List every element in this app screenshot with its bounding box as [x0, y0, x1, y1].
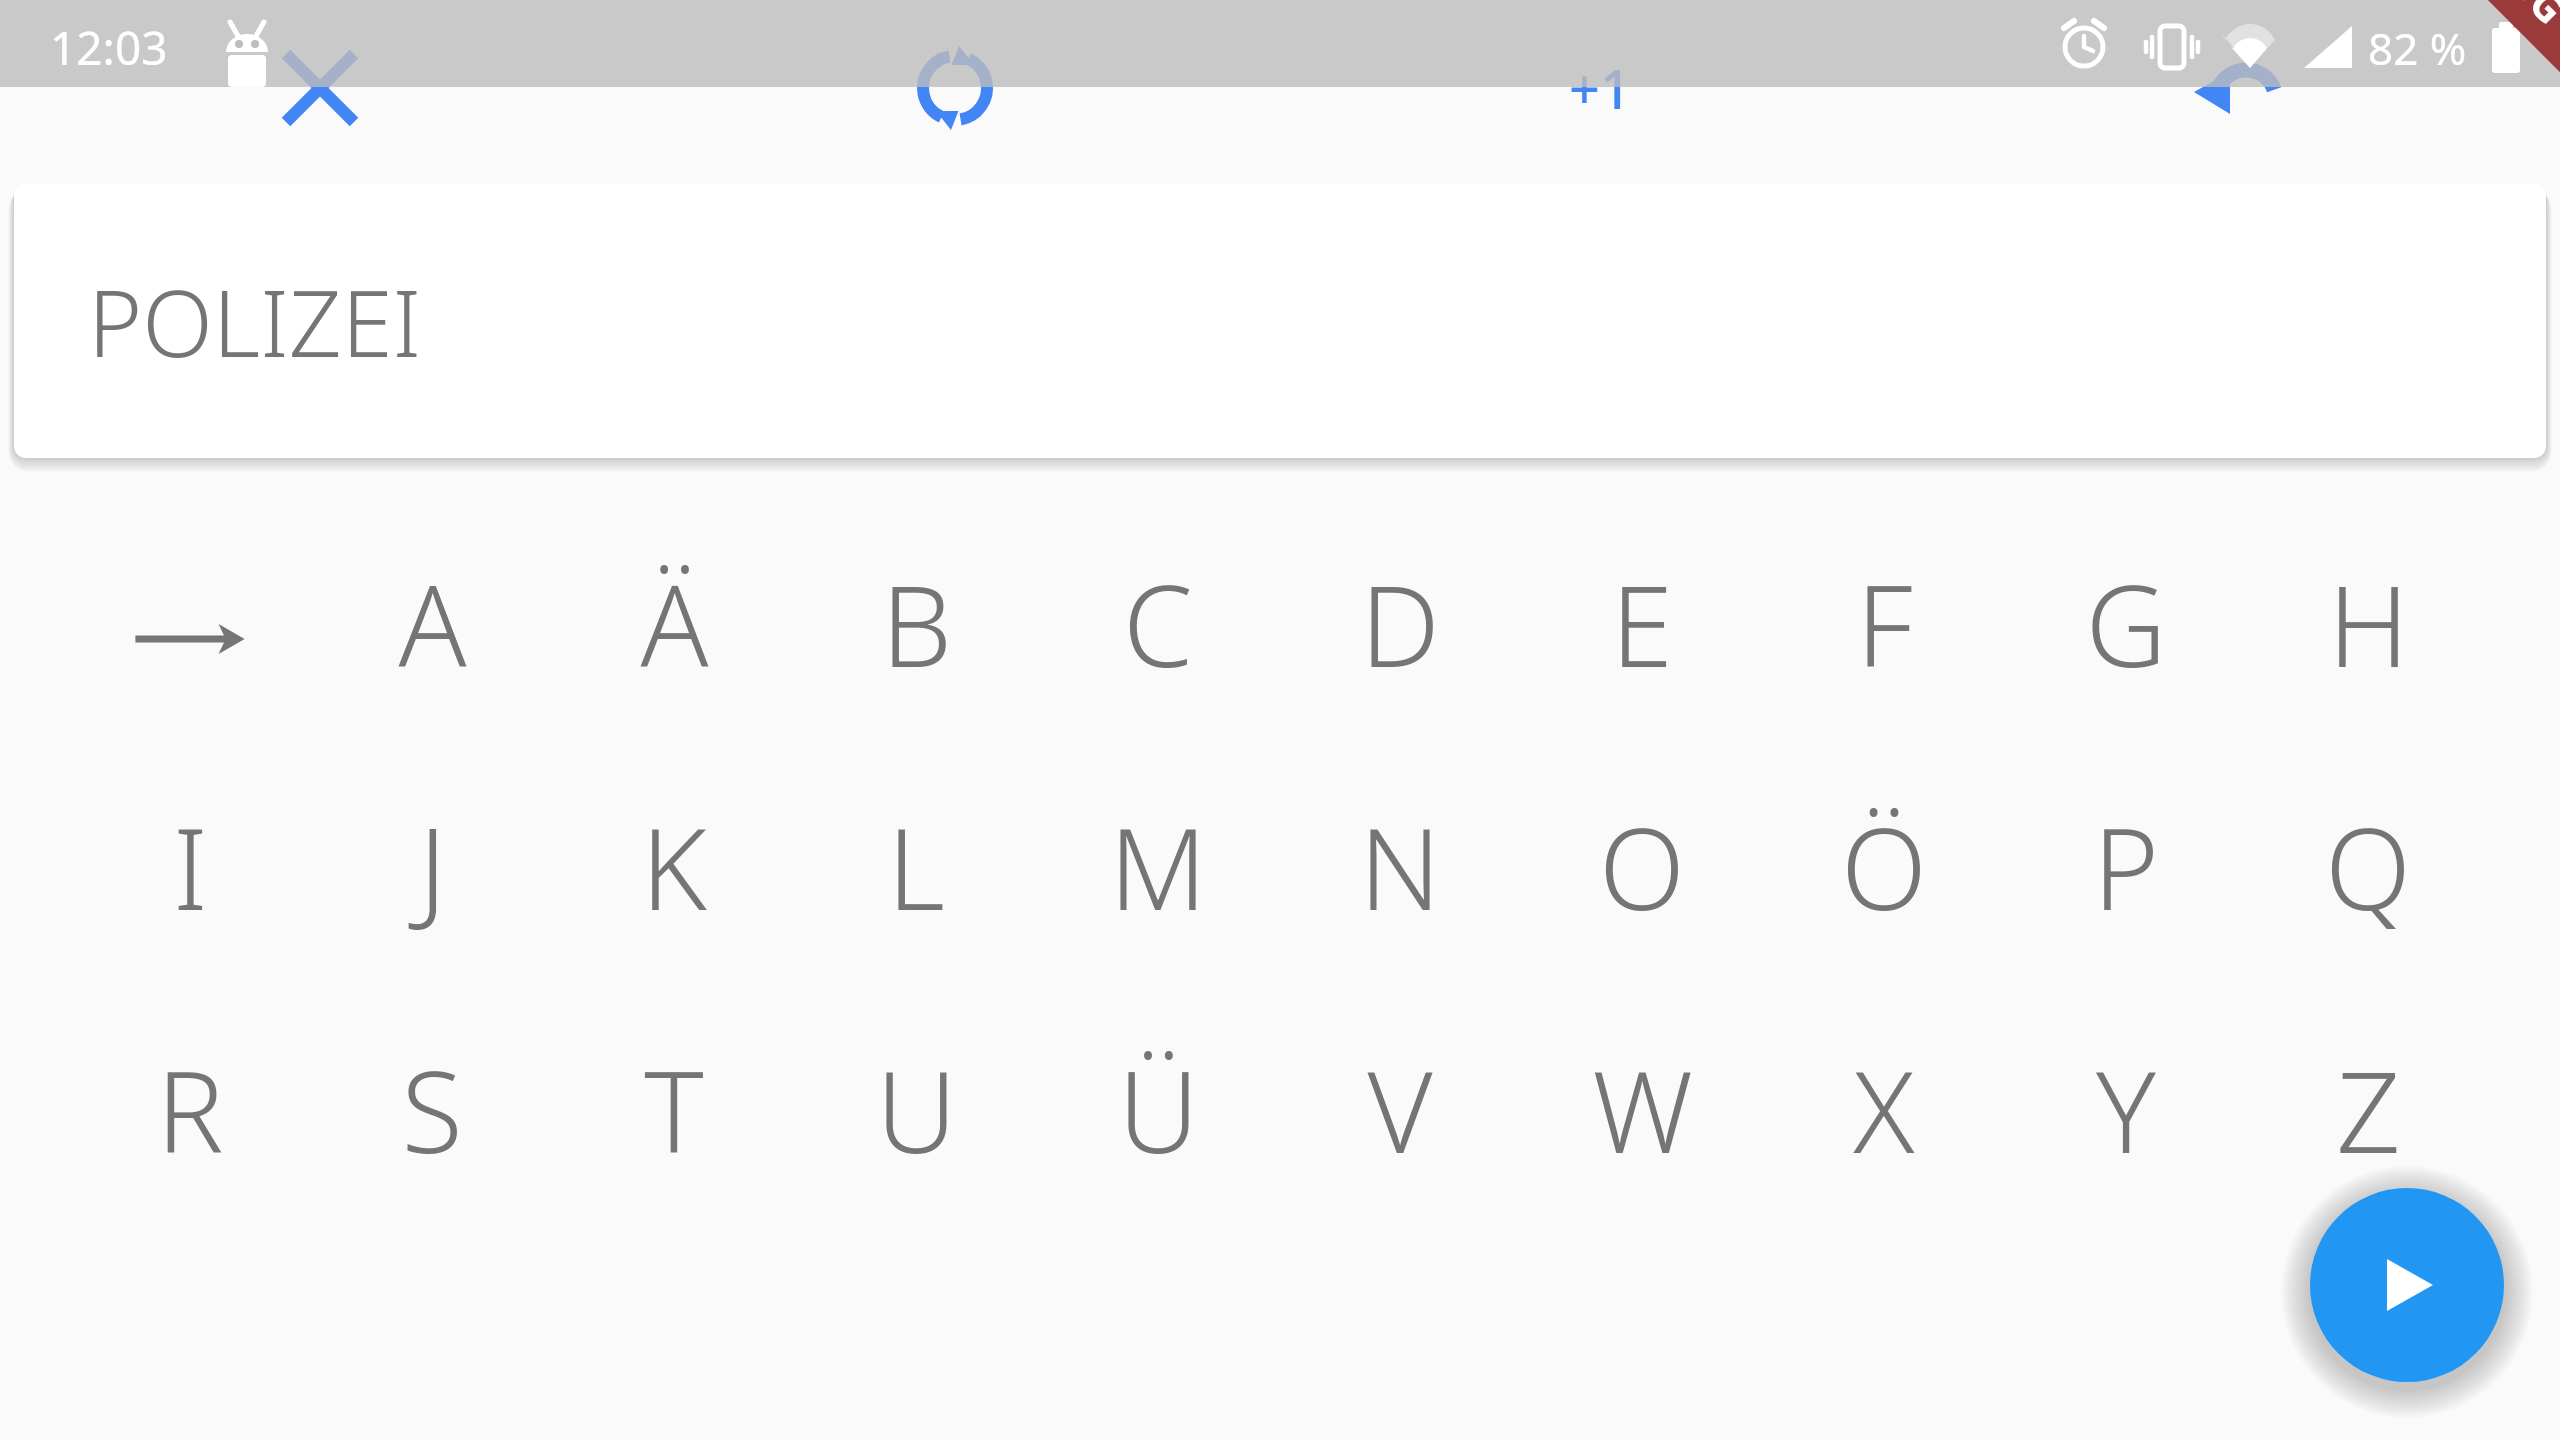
staticText: A	[398, 547, 467, 700]
button[interactable]: J	[316, 761, 548, 971]
button[interactable]: R	[74, 1004, 306, 1214]
button[interactable]: P	[2010, 761, 2242, 971]
staticText: D	[1360, 547, 1440, 700]
staticText: Ü	[1118, 1033, 1199, 1186]
staticText: B	[881, 547, 952, 700]
staticText: Q	[2325, 790, 2411, 943]
button[interactable]: G	[2010, 518, 2242, 728]
staticText: C	[1123, 547, 1193, 700]
staticText: F	[1856, 547, 1913, 700]
staticText: M	[1109, 790, 1207, 943]
staticText: POLIZEI	[88, 259, 422, 384]
staticText: Ä	[640, 547, 709, 700]
staticText: +1	[1569, 51, 1631, 125]
button[interactable]: Z	[2252, 1004, 2484, 1214]
button[interactable]: T	[558, 1004, 790, 1214]
staticText: P	[2093, 790, 2159, 943]
staticText: I	[173, 790, 208, 943]
staticText: R	[156, 1033, 224, 1186]
staticText: X	[1853, 1033, 1915, 1186]
staticText: V	[1367, 1033, 1433, 1186]
staticText: U	[876, 1033, 957, 1186]
staticText: N	[1359, 790, 1441, 943]
staticText: G	[2085, 547, 2167, 700]
button[interactable]: F	[1768, 518, 2000, 728]
staticText: O	[1599, 790, 1685, 943]
button[interactable]: O	[1526, 761, 1758, 971]
button[interactable]: Close	[250, 18, 390, 158]
button[interactable]: L	[800, 761, 1032, 971]
button[interactable]: Undo	[2172, 18, 2312, 158]
button[interactable]: S	[316, 1004, 548, 1214]
staticText: Ö	[1841, 790, 1927, 943]
staticText: W	[1592, 1033, 1693, 1186]
button[interactable]: M	[1042, 761, 1274, 971]
button[interactable]: H	[2252, 518, 2484, 728]
staticText: S	[401, 1033, 463, 1186]
other: Skip	[125, 574, 255, 704]
button[interactable]: Add one	[1530, 18, 1670, 158]
button[interactable]: I	[74, 761, 306, 971]
button[interactable]: W	[1526, 1004, 1758, 1214]
button[interactable]: C	[1042, 518, 1274, 728]
button[interactable]: K	[558, 761, 790, 971]
button[interactable]: N	[1284, 761, 1516, 971]
button[interactable]: POLIZEI	[14, 184, 2546, 458]
staticText: Y	[2096, 1033, 2156, 1186]
button[interactable]: Y	[2010, 1004, 2242, 1214]
button[interactable]: U	[800, 1004, 1032, 1214]
button[interactable]: Ü	[1042, 1004, 1274, 1214]
button[interactable]: Skip	[74, 518, 306, 728]
button[interactable]: Ö	[1768, 761, 2000, 971]
button[interactable]: A	[316, 518, 548, 728]
staticText: H	[2328, 547, 2409, 700]
staticText: 12:03	[50, 16, 168, 79]
staticText: E	[1611, 547, 1673, 700]
button[interactable]: X	[1768, 1004, 2000, 1214]
staticText: 82 %	[2368, 18, 2467, 78]
button[interactable]: V	[1284, 1004, 1516, 1214]
button[interactable]: Play	[2310, 1188, 2504, 1382]
button[interactable]: B	[800, 518, 1032, 728]
button[interactable]: Refresh	[885, 18, 1025, 158]
staticText: DEBUG	[2442, 0, 2560, 35]
button[interactable]: E	[1526, 518, 1758, 728]
button[interactable]: Q	[2252, 761, 2484, 971]
staticText: L	[887, 790, 945, 943]
staticText: K	[641, 790, 707, 943]
staticText: T	[644, 1033, 704, 1186]
button[interactable]: D	[1284, 518, 1516, 728]
button[interactable]: Ä	[558, 518, 790, 728]
staticText: J	[418, 790, 447, 943]
staticText: Z	[2336, 1033, 2401, 1186]
